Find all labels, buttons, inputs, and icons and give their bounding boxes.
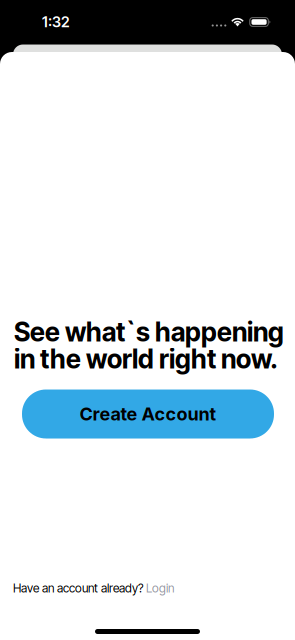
staticText: See what`s happening: [14, 316, 284, 348]
staticText: Have an account already?: [13, 581, 144, 595]
staticText: Create Account: [79, 403, 216, 425]
staticText: 1:32: [42, 13, 70, 31]
staticText: Login: [146, 581, 174, 595]
button[interactable]: Login: [144, 581, 174, 595]
staticText: in the world right now.: [14, 343, 278, 375]
button[interactable]: Create Account: [22, 389, 274, 438]
